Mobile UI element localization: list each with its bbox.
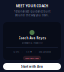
staticText: Strength & mobility bbox=[21, 41, 42, 44]
staticText: Coach Ava Reyes bbox=[18, 36, 45, 40]
staticText: 12 yrs · 4.9 ★ · 840 athletes bbox=[13, 50, 51, 53]
staticText: around the way you train. bbox=[15, 14, 49, 17]
staticText: Available now bbox=[25, 57, 39, 60]
staticText: MEET YOUR COACH bbox=[15, 3, 48, 8]
staticText: Personalised guidance built bbox=[13, 10, 50, 13]
button[interactable]: Start with Ava bbox=[3, 63, 61, 70]
staticText: Start with Ava bbox=[21, 64, 43, 68]
